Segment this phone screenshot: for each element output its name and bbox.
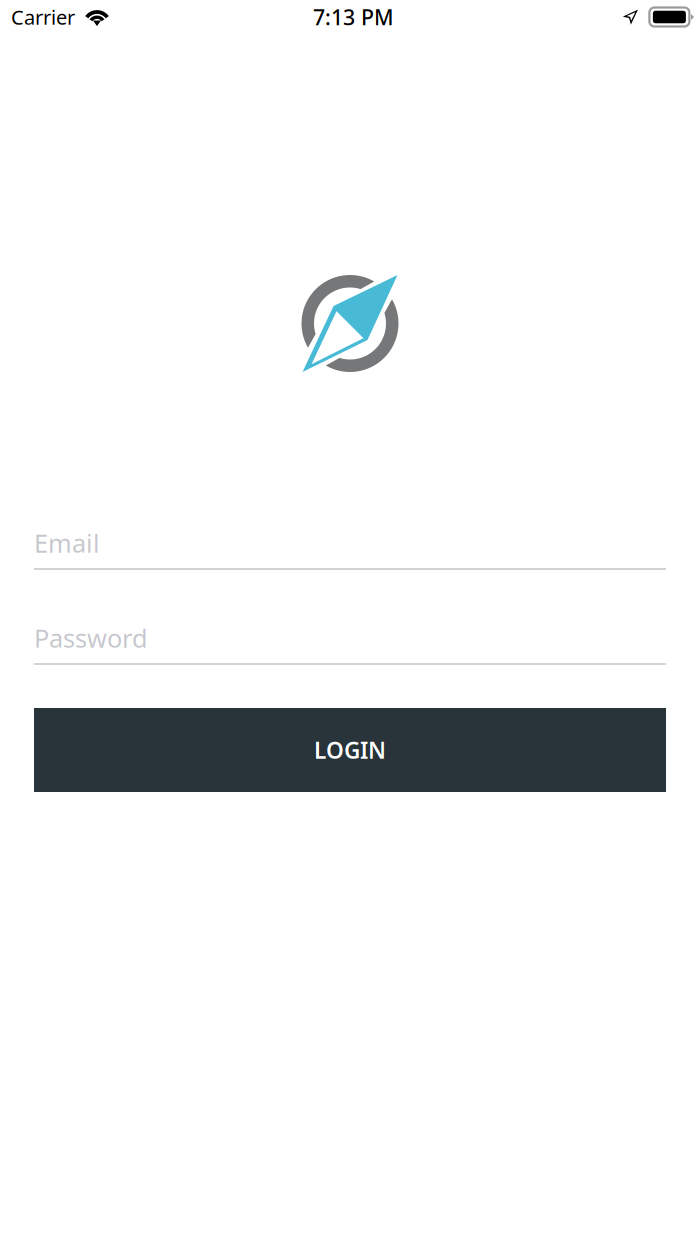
staticText: Password [34, 621, 148, 655]
button[interactable]: Password [34, 622, 666, 665]
button[interactable]: LOGIN [34, 708, 666, 792]
staticText: 7:13 PM [313, 3, 394, 31]
button[interactable]: Email [34, 527, 666, 570]
staticText: Email [34, 526, 100, 560]
staticText: Carrier [11, 4, 75, 30]
staticText: LOGIN [314, 735, 386, 765]
